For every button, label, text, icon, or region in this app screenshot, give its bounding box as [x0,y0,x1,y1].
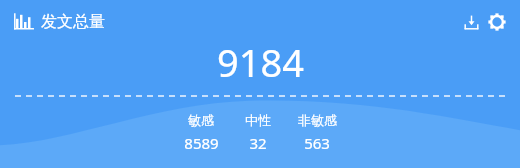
other: Chart [14,12,34,32]
staticText: 非敏感 [298,112,337,128]
staticText: 32 [249,133,267,153]
staticText: 563 [304,133,330,153]
staticText: 9184 [217,36,304,88]
staticText: 发文总量 [41,12,105,32]
button[interactable]: 敏感 [172,112,230,153]
button[interactable]: Settings [486,11,508,33]
button[interactable]: Download [460,11,482,33]
button[interactable]: 中性 [234,112,282,153]
staticText: 敏感 [188,112,214,128]
staticText: 8589 [184,133,219,153]
button[interactable]: 非敏感 [286,112,348,153]
staticText: 中性 [245,112,271,128]
